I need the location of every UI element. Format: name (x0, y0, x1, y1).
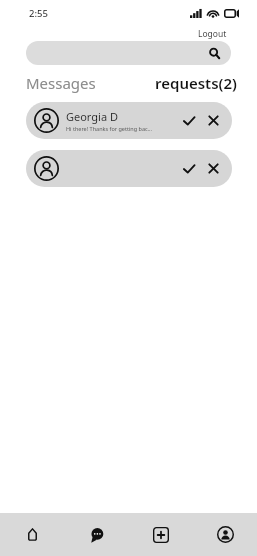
staticText: 2:55 (29, 7, 48, 20)
button[interactable]: Search (26, 41, 231, 65)
staticText: Messages (26, 73, 96, 93)
button[interactable]: Georgia D (26, 102, 232, 139)
button[interactable]: Accept request (181, 113, 197, 129)
button[interactable]: Accept request (181, 161, 197, 177)
button[interactable]: Decline request (206, 113, 221, 128)
button[interactable]: Logout (198, 28, 227, 40)
button[interactable]: Profile (193, 513, 257, 556)
staticText: Hi there! Thanks for getting bac... (66, 125, 153, 132)
other: Search (209, 48, 220, 59)
button[interactable]: Messages (26, 73, 96, 93)
button[interactable]: Home (0, 513, 65, 556)
button[interactable]: Decline request (206, 161, 221, 176)
staticText: requests(2) (155, 73, 237, 93)
button[interactable]: Messages (65, 513, 129, 556)
button[interactable]: Create (129, 513, 193, 556)
button[interactable]: Accept request (26, 150, 232, 187)
staticText: Logout (198, 28, 227, 40)
button[interactable]: requests(2) (155, 73, 237, 93)
staticText: Georgia D (66, 109, 118, 124)
